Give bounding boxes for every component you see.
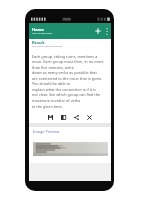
staticText: not clear. See which group can find the: [32, 92, 101, 97]
staticText: Result: [32, 40, 45, 45]
button[interactable]: Save: [44, 112, 57, 123]
staticText: Home: [32, 27, 44, 32]
button[interactable]: Share: [70, 112, 83, 123]
staticText: noun. Each group must then, in no more: [32, 59, 104, 64]
staticText: Image Preview: [33, 129, 60, 134]
staticText: in the given time.: [32, 104, 63, 109]
staticText: explain what the connection is if it is: [32, 87, 96, 92]
staticText: than five minutes, write: [32, 65, 74, 70]
button[interactable]: More options: [103, 23, 111, 39]
staticText: maximum number of verbs: [32, 98, 81, 103]
staticText: are connected to the noun that is given.: [32, 76, 103, 81]
button[interactable]: Add image: [92, 23, 103, 39]
staticText: down as many verbs as possible that: [32, 70, 97, 75]
button[interactable]: Close: [83, 112, 96, 123]
staticText: You should be able to: [32, 81, 71, 86]
button[interactable]: Image Preview: [32, 129, 61, 134]
staticText: Only English could be translated: [32, 45, 63, 48]
button[interactable]: Copy: [57, 112, 70, 123]
staticText: Each group, taking turns, mentions a: [32, 54, 98, 59]
staticText: Click + to insert image: [32, 32, 53, 35]
